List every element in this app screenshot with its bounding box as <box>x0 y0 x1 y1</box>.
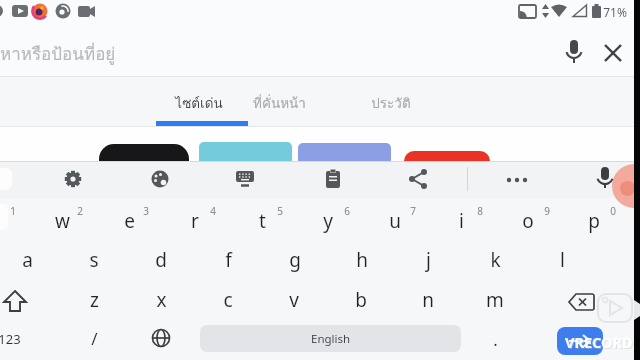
button[interactable] <box>406 167 430 191</box>
staticText: VRECORD <box>566 333 634 353</box>
staticText: g <box>289 247 301 273</box>
button[interactable] <box>505 168 529 192</box>
staticText: l <box>560 247 565 273</box>
button[interactable]: m <box>475 283 515 317</box>
button[interactable]: ที่คั่นหน้า <box>219 82 339 122</box>
staticText: 1 <box>10 204 16 218</box>
staticText: หาหรือป้อนที่อยู่ <box>0 40 116 67</box>
button[interactable]: z <box>74 283 114 317</box>
button[interactable]: 123 <box>0 324 24 354</box>
button[interactable]: i <box>441 204 481 238</box>
button[interactable] <box>602 42 624 64</box>
button[interactable]: g <box>275 243 315 277</box>
button[interactable]: s <box>74 243 114 277</box>
staticText: y <box>323 208 333 234</box>
staticText: s <box>89 247 99 273</box>
button[interactable]: b <box>341 283 381 317</box>
staticText: w <box>55 208 70 234</box>
staticText: p <box>588 208 600 234</box>
staticText: d <box>155 247 167 273</box>
staticText: / <box>91 327 98 350</box>
staticText: e <box>124 208 135 234</box>
button[interactable] <box>321 167 345 191</box>
staticText: 9 <box>544 204 550 218</box>
button[interactable]: c <box>208 283 248 317</box>
staticText: c <box>223 287 233 313</box>
staticText: 5 <box>277 204 283 218</box>
button[interactable]: v <box>274 283 314 317</box>
staticText: English <box>311 331 351 347</box>
button[interactable] <box>199 142 292 161</box>
staticText: 3 <box>143 204 149 218</box>
button[interactable] <box>1 288 31 316</box>
button[interactable]: n <box>408 283 448 317</box>
button[interactable] <box>593 165 617 193</box>
staticText: o <box>522 208 534 234</box>
button[interactable]: f <box>208 243 248 277</box>
button[interactable]: y <box>308 204 348 238</box>
button[interactable]: ไซต์เด่น <box>139 82 259 122</box>
staticText: i <box>459 208 464 234</box>
button[interactable]: r <box>175 204 215 238</box>
button[interactable] <box>298 143 391 161</box>
button[interactable] <box>566 290 596 314</box>
staticText: v <box>289 287 299 313</box>
button[interactable]: / <box>74 322 114 354</box>
button[interactable]: h <box>342 243 382 277</box>
button[interactable] <box>233 167 257 191</box>
button[interactable]: t <box>242 204 282 238</box>
button[interactable] <box>562 38 586 68</box>
button[interactable]: p <box>574 204 614 238</box>
staticText: k <box>490 247 501 273</box>
staticText: 71% <box>603 4 627 20</box>
staticText: 6 <box>344 204 350 218</box>
button[interactable]: j <box>408 243 448 277</box>
staticText: n <box>422 287 434 313</box>
button[interactable]: . <box>475 323 515 355</box>
button[interactable]: d <box>141 243 181 277</box>
button[interactable] <box>557 327 603 355</box>
staticText: 8 <box>477 204 483 218</box>
staticText: 0 <box>610 204 616 218</box>
staticText: a <box>22 247 33 273</box>
staticText: ประวัติ <box>371 92 411 113</box>
staticText: r <box>191 208 199 234</box>
button[interactable] <box>404 151 490 161</box>
staticText: 4 <box>210 204 216 218</box>
button[interactable] <box>148 167 172 191</box>
button[interactable]: k <box>475 243 515 277</box>
staticText: 7 <box>410 204 416 218</box>
staticText: VRECORD <box>565 332 633 352</box>
staticText: 2 <box>77 204 83 218</box>
button[interactable]: a <box>7 243 47 277</box>
staticText: u <box>389 208 401 234</box>
staticText: b <box>355 287 367 313</box>
staticText: h <box>356 247 368 273</box>
button[interactable]: u <box>375 204 415 238</box>
button[interactable]: ประวัติ <box>331 82 451 122</box>
staticText: j <box>426 247 431 273</box>
button[interactable]: o <box>508 204 548 238</box>
staticText: 123 <box>0 330 21 348</box>
button[interactable] <box>149 326 173 350</box>
staticText: m <box>486 287 504 313</box>
button[interactable]: w <box>42 204 82 238</box>
staticText: ที่คั่นหน้า <box>253 92 306 113</box>
button[interactable]: x <box>141 283 181 317</box>
button[interactable] <box>61 167 85 191</box>
staticText: ไซต์เด่น <box>175 92 223 113</box>
staticText: f <box>225 247 232 273</box>
staticText: . <box>493 328 498 351</box>
button[interactable]: e <box>109 204 149 238</box>
button[interactable] <box>99 144 189 161</box>
button[interactable]: หาหรือป้อนที่อยู่ <box>0 40 260 74</box>
button[interactable]: l <box>542 243 582 277</box>
button[interactable]: English <box>200 325 461 352</box>
staticText: t <box>259 208 266 234</box>
staticText: z <box>90 287 99 313</box>
staticText: x <box>156 287 167 313</box>
